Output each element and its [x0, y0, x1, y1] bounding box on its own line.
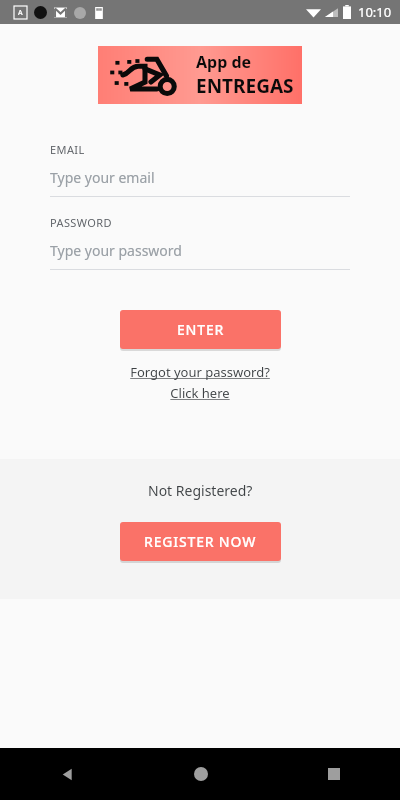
staticText: Type your password [50, 241, 182, 260]
button[interactable]: Forgot your password? [0, 363, 400, 402]
staticText: Type your email [50, 168, 155, 187]
staticText: A [18, 8, 23, 18]
button[interactable]: Recent apps [267, 748, 400, 800]
staticText: Click here [170, 384, 230, 402]
button[interactable]: ENTER [120, 310, 281, 349]
staticText: ENTREGAS [196, 73, 294, 99]
other: Delivery scooter logo [108, 53, 182, 97]
button[interactable]: EMAIL [50, 142, 350, 197]
button[interactable]: Back [0, 748, 134, 800]
staticText: ENTER [177, 320, 225, 339]
button[interactable]: Home [134, 748, 267, 800]
staticText: EMAIL [50, 142, 85, 157]
staticText: Forgot your password? [130, 363, 270, 381]
button[interactable]: PASSWORD [50, 215, 350, 270]
staticText: App de [196, 51, 252, 73]
staticText: PASSWORD [50, 215, 112, 230]
staticText: 10:10 [358, 3, 392, 21]
button[interactable]: REGISTER NOW [120, 522, 281, 561]
staticText: Not Registered? [148, 481, 253, 500]
staticText: REGISTER NOW [144, 532, 257, 551]
button[interactable]: Delivery scooter logo [98, 46, 302, 104]
